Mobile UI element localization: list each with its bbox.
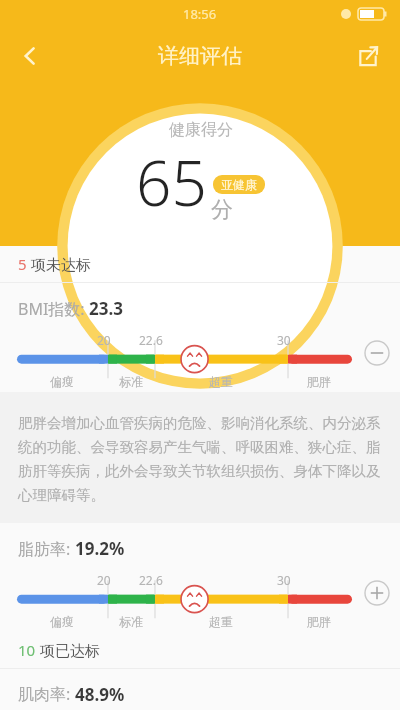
staticText: 5 [18, 254, 27, 274]
staticText: 亚健康 [221, 177, 257, 192]
staticText: 肌肉率: [18, 683, 75, 705]
staticText: 22.6 [139, 332, 163, 348]
staticText: 脂肪率: [18, 538, 75, 560]
button[interactable]: Collapse [362, 338, 392, 368]
button[interactable]: Expand [362, 578, 392, 608]
button[interactable]: Back [6, 32, 54, 80]
staticText: 肥胖 [307, 614, 331, 629]
staticText: 22.6 [139, 572, 163, 588]
staticText: 偏瘦 [50, 374, 74, 389]
staticText: 65 [136, 140, 207, 224]
staticText: 48.9% [75, 683, 125, 706]
staticText: 健康得分 [169, 120, 233, 140]
staticText: 30 [277, 332, 291, 348]
staticText: 超重 [209, 614, 233, 629]
staticText: 分 [211, 196, 233, 224]
staticText: 偏瘦 [50, 614, 74, 629]
staticText: BMI指数: [18, 298, 89, 320]
staticText: 18:56 [183, 5, 217, 23]
staticText: 超重 [209, 374, 233, 389]
staticText: 项已达标 [36, 640, 100, 660]
staticText: 10 [18, 640, 36, 660]
staticText: 20 [97, 572, 111, 588]
staticText: 标准 [119, 614, 143, 629]
staticText: 23.3 [89, 297, 123, 320]
staticText: 肥胖 [307, 374, 331, 389]
staticText: 肥胖会增加心血管疾病的危险、影响消化系统、内分泌系统的功能、会导致容易产生气喘、… [18, 414, 384, 504]
staticText: 19.2% [75, 537, 125, 560]
staticText: 标准 [119, 374, 143, 389]
button[interactable]: Share [344, 32, 392, 80]
staticText: 项未达标 [27, 254, 91, 274]
staticText: 详细评估 [158, 43, 242, 69]
staticText: 20 [97, 332, 111, 348]
staticText: 30 [277, 572, 291, 588]
